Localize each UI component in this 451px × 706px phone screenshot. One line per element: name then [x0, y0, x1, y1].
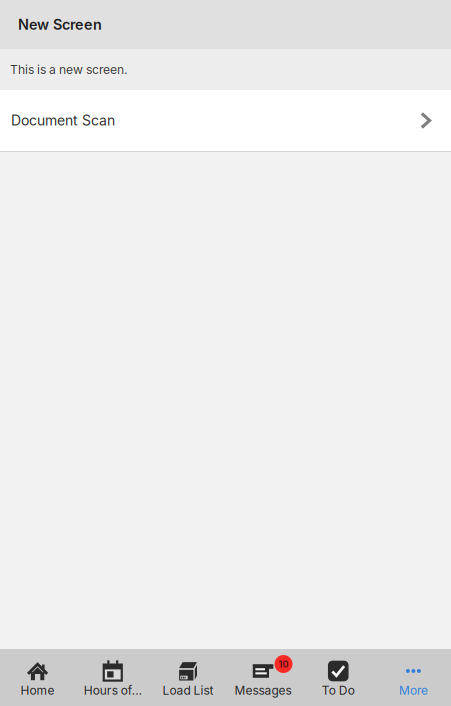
button[interactable]: Home	[0, 649, 75, 706]
staticText: New Screen	[18, 16, 102, 33]
staticText: Hours of…	[84, 683, 142, 698]
button[interactable]: Load List	[150, 649, 225, 706]
staticText: Load List	[162, 683, 213, 698]
staticText: Home	[21, 683, 55, 698]
staticText: This is a new screen.	[10, 62, 127, 77]
button[interactable]: Messages	[225, 649, 301, 706]
staticText: Document Scan	[11, 112, 115, 129]
button[interactable]: More	[376, 649, 451, 706]
button[interactable]: To Do	[301, 649, 376, 706]
staticText: 10	[278, 658, 288, 670]
button[interactable]: Hours of…	[75, 649, 150, 706]
staticText: Messages	[235, 683, 292, 698]
staticText: To Do	[322, 683, 355, 698]
staticText: More	[399, 683, 428, 698]
button[interactable]: Document Scan	[0, 90, 451, 151]
